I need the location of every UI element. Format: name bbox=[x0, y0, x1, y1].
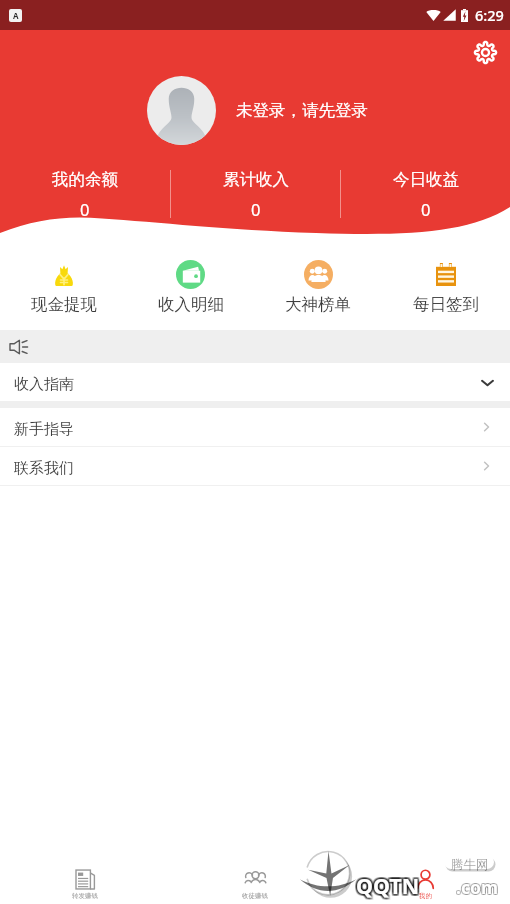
staticText: 转发赚钱 bbox=[72, 892, 98, 900]
button[interactable]: 收入明细 bbox=[127, 235, 254, 330]
staticText: 新手指导 bbox=[14, 420, 74, 439]
staticText: QQTN bbox=[354, 872, 418, 901]
staticText: QQTN bbox=[356, 869, 420, 898]
button[interactable]: 大神榜单 bbox=[254, 235, 382, 330]
staticText: 大神榜单 bbox=[285, 294, 351, 315]
staticText: QQTN bbox=[355, 870, 419, 899]
staticText: 0 bbox=[421, 198, 431, 220]
button[interactable]: Announcements bbox=[0, 330, 510, 363]
staticText: QQTN bbox=[358, 870, 422, 899]
button[interactable]: 收徒赚钱 bbox=[170, 850, 340, 904]
staticText: QQTN bbox=[355, 869, 419, 898]
staticText: 我的 bbox=[419, 892, 432, 900]
button[interactable]: 收入指南 bbox=[0, 363, 510, 401]
button[interactable]: 我的 bbox=[340, 850, 510, 904]
staticText: 0 bbox=[80, 198, 90, 220]
staticText: QQTN bbox=[354, 870, 418, 899]
staticText: .com bbox=[455, 874, 497, 898]
staticText: .com bbox=[456, 874, 498, 898]
staticText: 现金提现 bbox=[31, 294, 97, 315]
staticText: .com bbox=[457, 875, 499, 899]
staticText: QQTN bbox=[357, 869, 421, 898]
staticText: 6:29 bbox=[475, 5, 504, 25]
staticText: 我的余额 bbox=[52, 169, 118, 190]
button[interactable]: Settings bbox=[469, 36, 501, 68]
staticText: 0 bbox=[251, 198, 261, 220]
button[interactable]: 现金提现 bbox=[0, 235, 127, 330]
staticText: QQTN bbox=[354, 871, 418, 900]
staticText: A bbox=[13, 10, 19, 21]
button[interactable]: 每日签到 bbox=[382, 235, 510, 330]
staticText: QQTN bbox=[357, 870, 421, 899]
button[interactable]: 今日收益 bbox=[341, 168, 510, 220]
staticText: QQTN bbox=[358, 872, 422, 901]
staticText: QQTN bbox=[357, 873, 421, 902]
staticText: 腾牛网 bbox=[451, 857, 489, 873]
staticText: 未登录，请先登录 bbox=[236, 100, 368, 121]
staticText: .com bbox=[456, 876, 498, 900]
staticText: QQTN bbox=[357, 872, 421, 901]
staticText: QQTN bbox=[354, 873, 418, 902]
staticText: .com bbox=[455, 876, 497, 900]
staticText: .com bbox=[457, 876, 499, 900]
staticText: QQTN bbox=[358, 871, 422, 900]
staticText: .com bbox=[455, 875, 497, 899]
staticText: 收入明细 bbox=[158, 294, 224, 315]
staticText: 每日签到 bbox=[413, 294, 479, 315]
staticText: 联系我们 bbox=[14, 459, 74, 478]
staticText: 收入指南 bbox=[14, 375, 74, 394]
button[interactable]: 我的余额 bbox=[0, 168, 170, 220]
staticText: QQTN bbox=[355, 873, 419, 902]
button[interactable]: 新手指导 bbox=[0, 408, 510, 446]
staticText: QQTN bbox=[356, 873, 420, 902]
staticText: .com bbox=[457, 874, 499, 898]
staticText: QQTN bbox=[354, 869, 418, 898]
button[interactable]: 转发赚钱 bbox=[0, 850, 170, 904]
staticText: QQTN bbox=[356, 871, 420, 900]
button[interactable]: 未登录，请先登录 bbox=[236, 98, 368, 122]
staticText: 累计收入 bbox=[223, 169, 289, 190]
staticText: QQTN bbox=[358, 869, 422, 898]
button[interactable]: 联系我们 bbox=[0, 447, 510, 485]
staticText: QQTN bbox=[358, 873, 422, 902]
staticText: 今日收益 bbox=[393, 169, 459, 190]
button[interactable]: 累计收入 bbox=[171, 168, 340, 220]
staticText: 收徒赚钱 bbox=[242, 892, 268, 900]
staticText: .com bbox=[456, 875, 498, 899]
button[interactable]: Avatar bbox=[147, 76, 216, 145]
staticText: QQTN bbox=[355, 872, 419, 901]
